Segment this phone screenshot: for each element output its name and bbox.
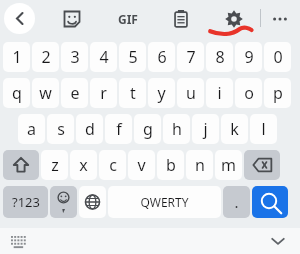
button[interactable]: QWERTY: [108, 186, 221, 218]
button[interactable]: Backspace: [244, 150, 280, 180]
button[interactable]: g: [134, 114, 161, 144]
staticText: 1: [12, 46, 22, 68]
button[interactable]: .: [223, 186, 250, 218]
button[interactable]: 2: [32, 42, 59, 72]
button[interactable]: t: [119, 78, 146, 108]
button[interactable]: 5: [119, 42, 146, 72]
button[interactable]: k: [221, 114, 248, 144]
staticText: v: [137, 154, 146, 176]
button[interactable]: x: [70, 150, 97, 180]
button[interactable]: 7: [177, 42, 204, 72]
staticText: k: [230, 118, 239, 140]
staticText: 9: [244, 46, 254, 68]
staticText: a: [27, 118, 36, 140]
button[interactable]: GIF: [112, 7, 144, 31]
button[interactable]: a: [18, 114, 45, 144]
button[interactable]: s: [47, 114, 74, 144]
button[interactable]: y: [148, 78, 175, 108]
button[interactable]: f: [105, 114, 132, 144]
button[interactable]: 9: [235, 42, 262, 72]
staticText: .: [234, 192, 239, 212]
button[interactable]: u: [177, 78, 204, 108]
staticText: 6: [157, 46, 167, 68]
staticText: 3: [70, 46, 80, 68]
button[interactable]: Emoji: [50, 186, 77, 218]
button[interactable]: Stickers: [60, 7, 84, 31]
staticText: f: [116, 118, 122, 140]
staticText: g: [143, 118, 153, 140]
staticText: q: [12, 82, 22, 104]
staticText: 4: [99, 46, 109, 68]
staticText: w: [39, 82, 52, 104]
button[interactable]: b: [157, 150, 184, 180]
staticText: 8: [215, 46, 225, 68]
button[interactable]: More options: [268, 7, 292, 31]
staticText: p: [273, 82, 283, 104]
staticText: x: [79, 154, 88, 176]
staticText: b: [166, 154, 176, 176]
staticText: o: [244, 82, 254, 104]
button[interactable]: c: [99, 150, 126, 180]
staticText: QWERTY: [140, 194, 189, 210]
staticText: u: [186, 82, 196, 104]
staticText: 2: [41, 46, 51, 68]
button[interactable]: r: [90, 78, 117, 108]
button[interactable]: Shift: [3, 150, 39, 180]
button[interactable]: Clipboard: [169, 7, 193, 31]
staticText: c: [109, 154, 117, 176]
staticText: 5: [128, 46, 138, 68]
button[interactable]: Settings: [221, 6, 247, 32]
button[interactable]: 3: [61, 42, 88, 72]
button[interactable]: h: [163, 114, 190, 144]
button[interactable]: v: [128, 150, 155, 180]
staticText: j: [203, 118, 208, 140]
staticText: l: [261, 118, 266, 140]
staticText: 7: [186, 46, 196, 68]
button[interactable]: p: [264, 78, 291, 108]
staticText: e: [70, 82, 80, 104]
staticText: m: [221, 154, 236, 176]
button[interactable]: 6: [148, 42, 175, 72]
staticText: t: [130, 82, 136, 104]
staticText: n: [195, 154, 205, 176]
button[interactable]: z: [41, 150, 68, 180]
button[interactable]: n: [186, 150, 213, 180]
button[interactable]: Search: [252, 186, 288, 218]
button[interactable]: Keyboard: [8, 230, 30, 252]
button[interactable]: d: [76, 114, 103, 144]
button[interactable]: 8: [206, 42, 233, 72]
button[interactable]: w: [32, 78, 59, 108]
button[interactable]: 0: [264, 42, 291, 72]
button[interactable]: l: [250, 114, 277, 144]
staticText: GIF: [118, 11, 138, 27]
button[interactable]: ?123: [3, 186, 48, 218]
button[interactable]: Change language: [79, 186, 106, 218]
button[interactable]: m: [215, 150, 242, 180]
staticText: s: [57, 118, 65, 140]
staticText: r: [100, 82, 107, 104]
staticText: y: [157, 82, 166, 104]
button[interactable]: q: [3, 78, 30, 108]
staticText: ?123: [12, 193, 40, 211]
button[interactable]: i: [206, 78, 233, 108]
button[interactable]: j: [192, 114, 219, 144]
staticText: 0: [273, 46, 283, 68]
button[interactable]: Hide keyboard: [266, 229, 290, 253]
button[interactable]: Back: [4, 3, 35, 34]
button[interactable]: 1: [3, 42, 30, 72]
staticText: i: [217, 82, 222, 104]
staticText: h: [172, 118, 182, 140]
button[interactable]: e: [61, 78, 88, 108]
staticText: d: [85, 118, 95, 140]
staticText: z: [51, 154, 59, 176]
button[interactable]: o: [235, 78, 262, 108]
button[interactable]: 4: [90, 42, 117, 72]
